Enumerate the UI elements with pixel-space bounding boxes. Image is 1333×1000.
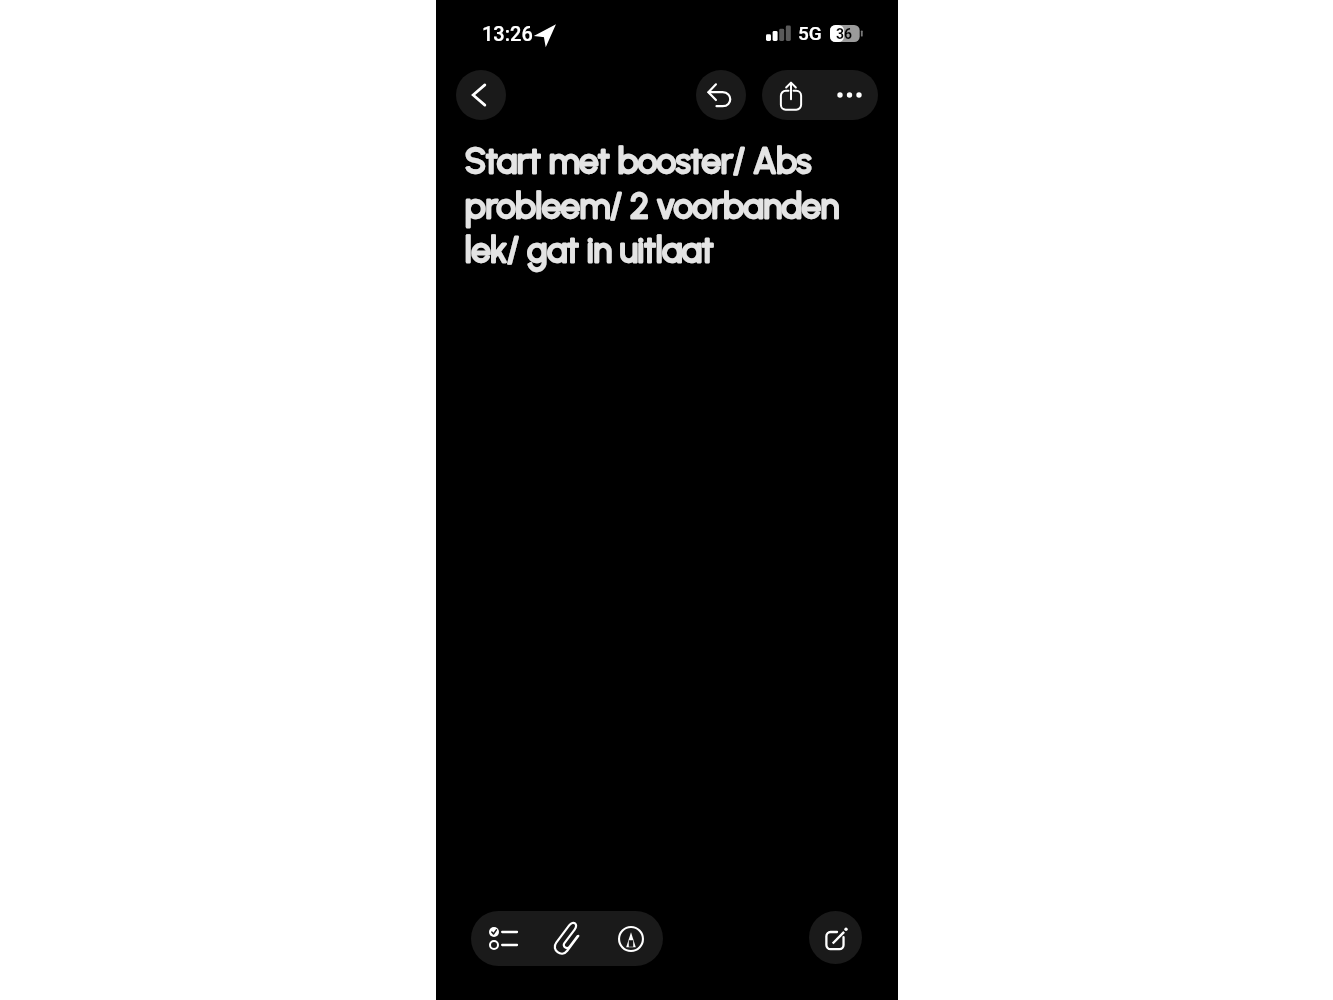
button[interactable]: Markup [599,911,663,966]
button[interactable]: New note [809,911,862,964]
staticText: 5G [798,22,822,44]
button[interactable]: Checklist [471,911,535,966]
staticText: 13:26 [482,22,533,45]
button[interactable]: More options [820,70,878,120]
button[interactable]: Back [456,70,506,120]
staticText: Start met booster/ Abs probleem/ 2 voorb… [465,141,880,270]
button[interactable]: Share [762,70,820,120]
button[interactable]: Attach file [535,911,599,966]
staticText: Start met booster/ Abs probleem/ 2 voorb… [465,141,880,270]
button[interactable]: Undo [696,70,746,120]
staticText: 36 [836,26,853,42]
